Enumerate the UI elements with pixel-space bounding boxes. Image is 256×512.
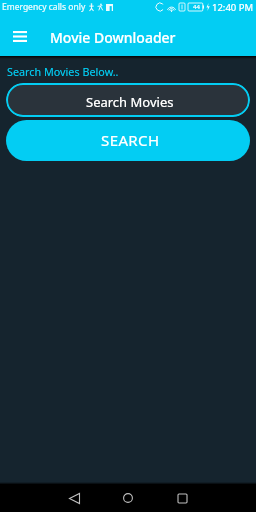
staticText: Movie Downloader: [50, 28, 176, 47]
button[interactable]: Back: [47, 484, 101, 512]
staticText: Emergency calls only: [2, 1, 86, 13]
button[interactable]: Open navigation menu: [5, 21, 35, 51]
button[interactable]: SEARCH: [6, 120, 250, 161]
button[interactable]: Search Movies: [6, 83, 250, 117]
button[interactable]: Recent apps: [155, 484, 209, 512]
staticText: Search Movies: [86, 93, 174, 111]
staticText: 44: [193, 3, 200, 11]
staticText: SEARCH: [101, 130, 160, 150]
staticText: Search Movies Below..: [7, 64, 119, 79]
staticText: 12:40 PM: [212, 1, 254, 14]
button[interactable]: Home: [101, 484, 155, 512]
